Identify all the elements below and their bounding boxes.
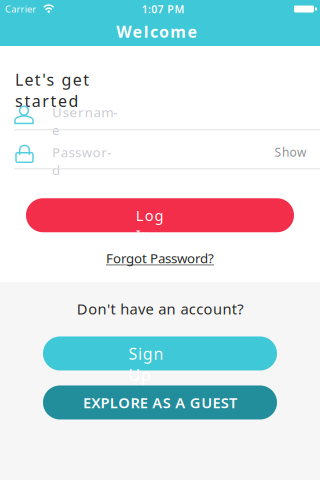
staticText: Sign Up [128,343,192,364]
staticText: Log In [136,205,184,225]
staticText: Password [52,143,115,161]
staticText: Forgot Password? [106,249,214,267]
staticText: Let's get started [15,69,159,90]
button[interactable]: Username [0,105,320,130]
staticText: Carrier [5,3,36,15]
button[interactable]: Log In [26,198,294,232]
button[interactable]: Password [16,144,267,168]
staticText: Username [52,103,122,121]
staticText: EXPLORE AS A GUEST [83,393,237,412]
staticText: Welcome! [116,21,204,42]
button[interactable]: EXPLORE AS A GUEST [43,385,277,419]
button[interactable]: Forgot Password? [106,249,214,267]
staticText: 1:07 PM [142,2,184,16]
button[interactable]: Sign Up [43,336,277,370]
staticText: Don't have an account? [77,299,243,318]
button[interactable]: Show [267,144,313,168]
staticText: Show [274,144,306,160]
